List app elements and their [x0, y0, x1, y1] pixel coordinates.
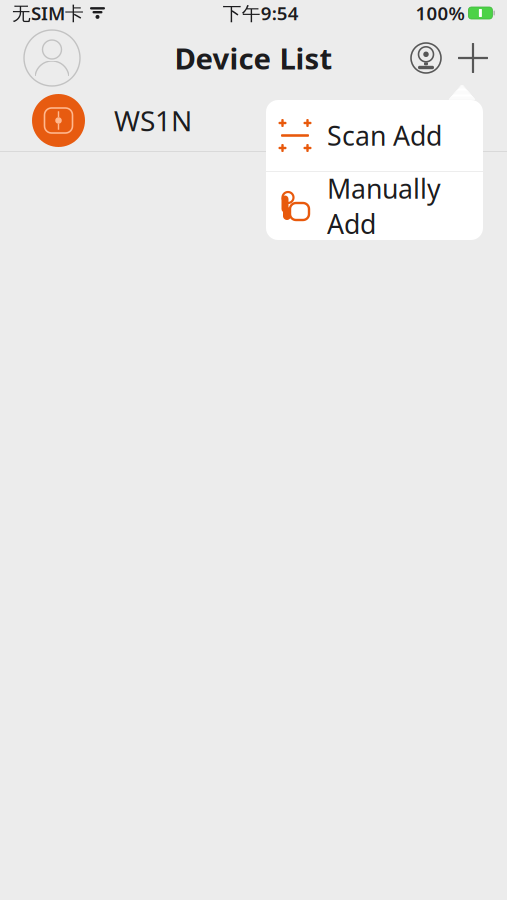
staticText: Device List — [174, 38, 332, 77]
staticText: 下午9:54 — [223, 1, 299, 25]
button[interactable]: Add device — [449, 32, 497, 84]
staticText: Scan Add — [327, 118, 442, 153]
button[interactable]: Camera — [403, 32, 449, 84]
staticText: 100% — [415, 1, 464, 25]
staticText: 无SIM卡 — [12, 1, 84, 25]
button[interactable]: Profile — [20, 26, 84, 90]
staticText: WS1N — [114, 102, 192, 139]
button[interactable]: Scan Add — [266, 100, 483, 171]
button[interactable]: WS1N — [0, 90, 507, 152]
button[interactable]: Manually Add — [266, 172, 483, 240]
staticText: Manually Add — [327, 171, 441, 241]
